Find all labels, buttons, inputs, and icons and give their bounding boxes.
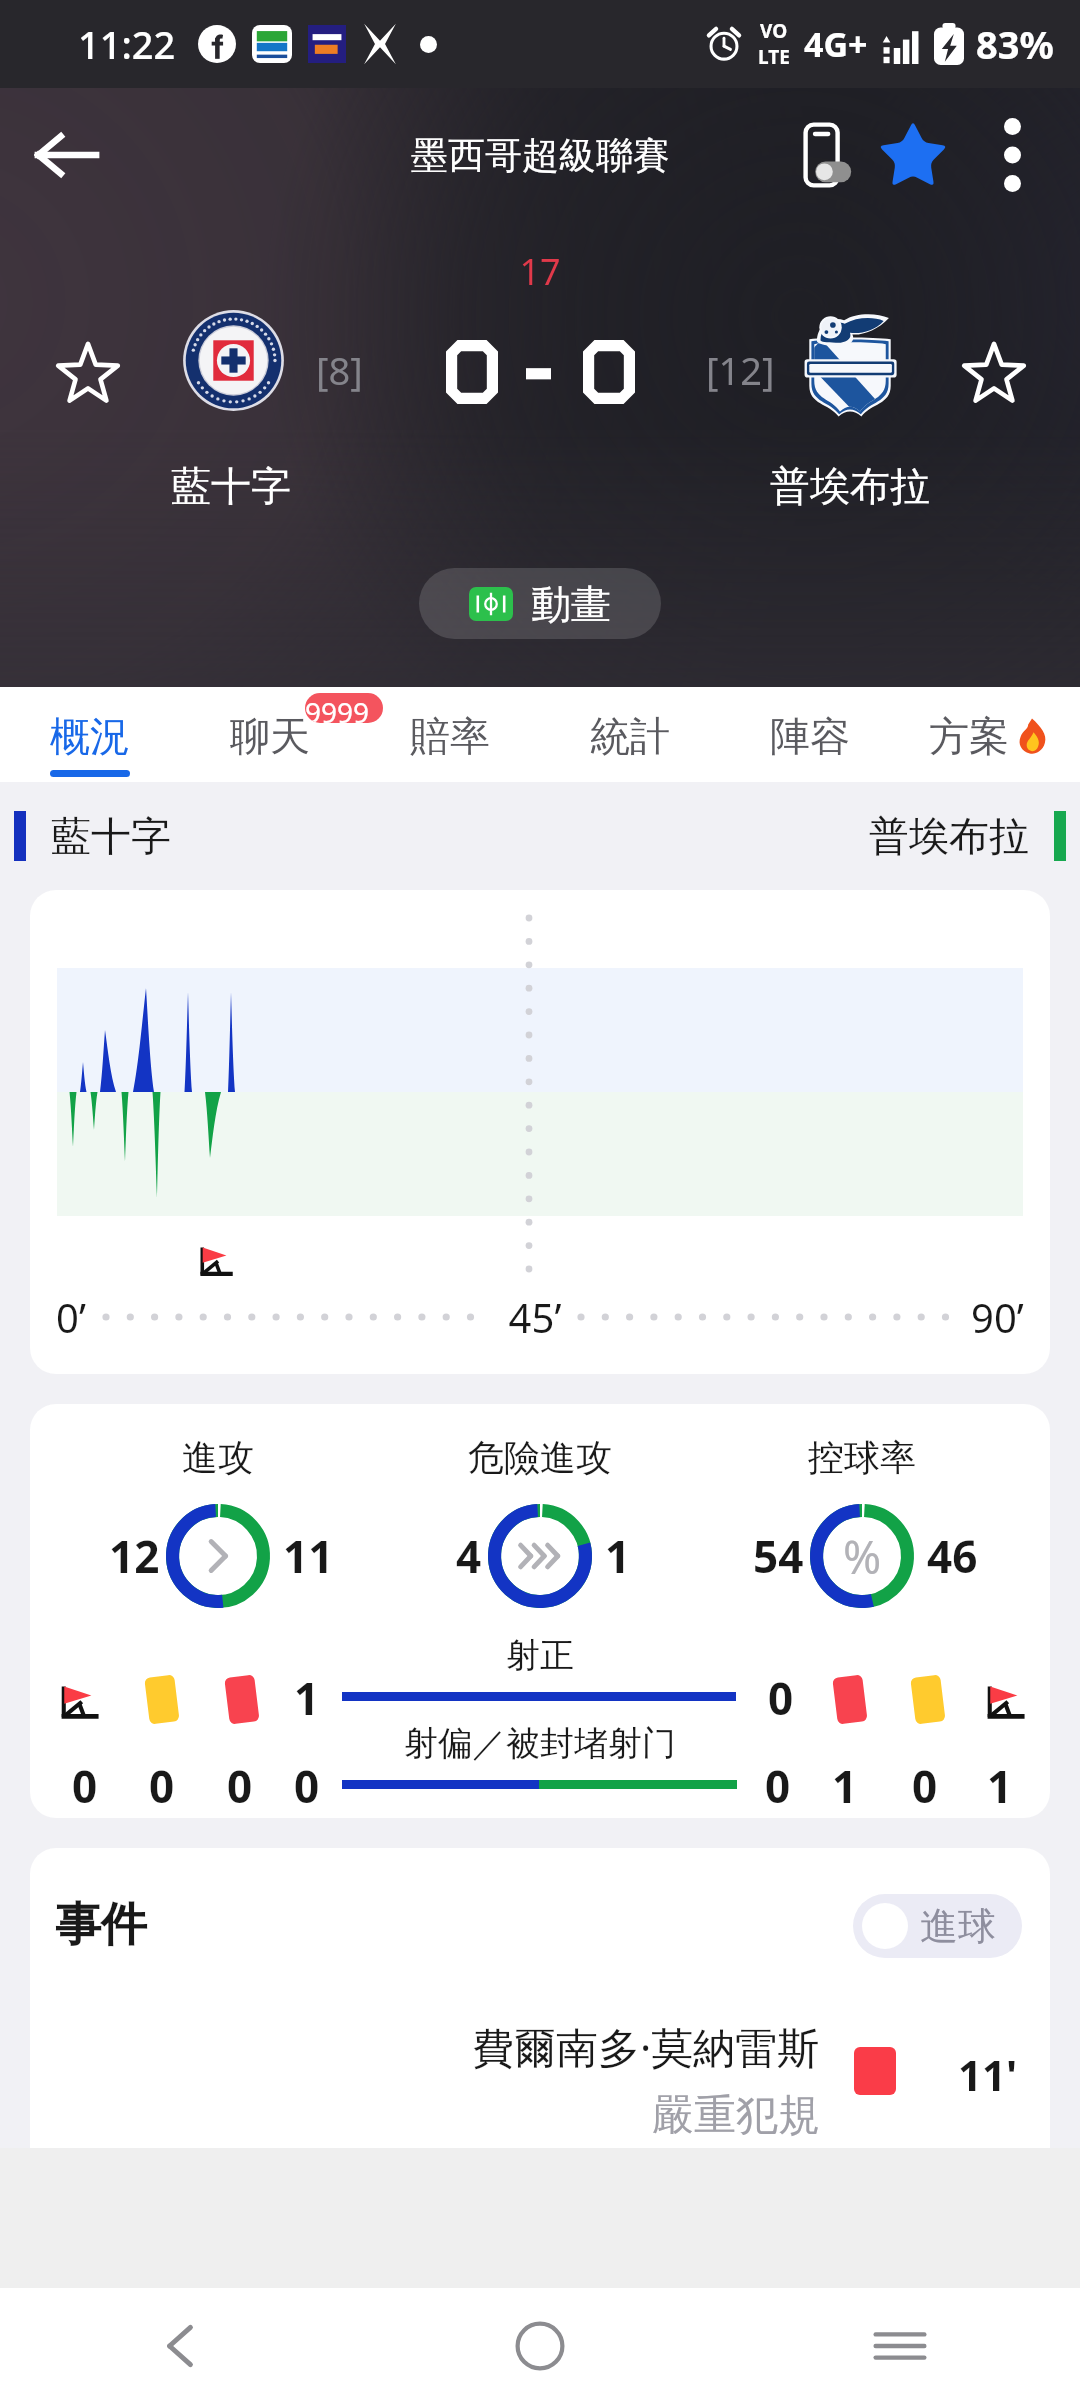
staticText: 0 — [912, 1756, 938, 1812]
button[interactable]: 進球 — [853, 1894, 1022, 1958]
staticText: 0 — [72, 1756, 98, 1812]
button[interactable]: 概況 — [0, 687, 180, 782]
staticText: 賠率 — [410, 711, 490, 761]
staticText: 0’ — [56, 1290, 86, 1344]
staticText: 12 — [109, 1526, 160, 1586]
staticText: [12] — [706, 344, 775, 396]
staticText: 1 — [832, 1756, 858, 1812]
button[interactable]: 統計 — [540, 687, 720, 782]
staticText: 0 — [765, 1756, 791, 1812]
button[interactable]: Favorite home team — [30, 316, 145, 431]
button[interactable]: Vibration mode — [780, 107, 876, 203]
staticText: 90’ — [971, 1290, 1024, 1344]
staticText: 普埃布拉 — [869, 811, 1029, 861]
staticText: 危險進攻 — [468, 1435, 612, 1480]
staticText: 1 — [605, 1526, 631, 1586]
button[interactable]: 聊天 — [180, 687, 360, 782]
staticText: 事件 — [55, 1896, 147, 1954]
staticText: [8] — [316, 344, 363, 396]
staticText: 嚴重犯規 — [652, 2089, 820, 2142]
staticText: 4 — [456, 1526, 482, 1586]
button[interactable]: Favorite away team — [936, 316, 1051, 431]
staticText: 0 — [227, 1756, 253, 1812]
staticText: 藍十字 — [51, 811, 171, 861]
staticText: 普埃布拉 — [770, 461, 930, 511]
staticText: 聊天 — [230, 711, 310, 761]
staticText: 83% — [976, 18, 1054, 70]
staticText: 進球 — [920, 1902, 996, 1950]
staticText: 1 — [294, 1668, 320, 1724]
staticText: 射正 — [30, 1634, 1050, 1677]
button[interactable]: More options — [966, 109, 1058, 201]
staticText: 45’ — [30, 1290, 1045, 1344]
staticText: 陣容 — [770, 711, 850, 761]
button[interactable]: Back — [0, 2288, 360, 2404]
staticText: 11:22 — [78, 18, 176, 70]
staticText: 費爾南多·莫納雷斯 — [472, 2018, 820, 2075]
button[interactable]: 陣容 — [720, 687, 900, 782]
staticText: 54 — [753, 1526, 804, 1586]
staticText: LTE — [758, 44, 790, 70]
staticText: 4G+ — [804, 21, 868, 67]
button[interactable]: 方案 — [900, 687, 1080, 782]
button[interactable]: 賠率 — [360, 687, 540, 782]
staticText: 0 — [294, 1756, 320, 1812]
staticText: % — [843, 1525, 882, 1588]
staticText: 統計 — [590, 711, 670, 761]
staticText: 動畫 — [531, 579, 611, 629]
staticText: 概況 — [50, 711, 130, 761]
staticText: 46 — [927, 1526, 978, 1586]
button[interactable]: Back — [20, 108, 114, 202]
button[interactable]: Recent apps — [720, 2288, 1080, 2404]
staticText: 11 — [283, 1526, 334, 1586]
staticText: 11' — [958, 2046, 1018, 2103]
staticText: VO — [760, 18, 788, 44]
button[interactable]: 動畫 — [419, 568, 661, 639]
staticText: 藍十字 — [171, 461, 291, 511]
staticText: 墨西哥超級聯賽 — [411, 132, 670, 179]
staticText: 17 — [0, 247, 1080, 296]
staticText: 控球率 — [808, 1435, 916, 1480]
staticText: 0 — [768, 1668, 794, 1724]
staticText: 9999+ — [305, 693, 383, 723]
button[interactable]: Home — [360, 2288, 720, 2404]
staticText: 射偏／被封堵射门 — [30, 1722, 1050, 1765]
staticText: 方案 — [929, 711, 1009, 761]
staticText: 0 — [149, 1756, 175, 1812]
button[interactable]: Favorite — [865, 107, 961, 203]
staticText: 進攻 — [182, 1435, 254, 1480]
staticText: 1 — [987, 1756, 1013, 1812]
